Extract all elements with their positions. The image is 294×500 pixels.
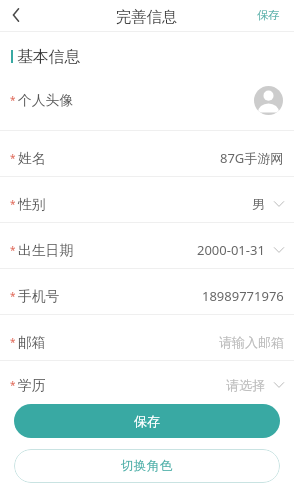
staticText: *: [10, 197, 16, 211]
staticText: 切换角色: [121, 458, 173, 474]
button[interactable]: *: [0, 361, 294, 404]
button[interactable]: 保存: [14, 404, 280, 438]
staticText: *: [10, 378, 16, 392]
button[interactable]: *: [0, 177, 294, 223]
staticText: 18989771976: [202, 287, 284, 305]
staticText: *: [10, 151, 16, 165]
staticText: 完善信息: [116, 7, 178, 26]
button[interactable]: 切换角色: [14, 449, 280, 483]
staticText: 基本信息: [17, 47, 81, 67]
staticText: 保存: [257, 8, 280, 22]
staticText: 87G手游网: [220, 149, 284, 167]
staticText: 性别: [18, 196, 46, 213]
staticText: 出生日期: [18, 242, 74, 259]
staticText: 手机号: [18, 288, 60, 305]
button[interactable]: Back: [0, 0, 34, 31]
staticText: *: [10, 93, 16, 107]
staticText: *: [10, 335, 16, 349]
button[interactable]: *: [0, 315, 294, 361]
button[interactable]: 保存: [243, 0, 294, 31]
staticText: 请输入邮箱: [219, 334, 284, 350]
staticText: 2000-01-31: [197, 241, 265, 259]
staticText: *: [10, 289, 16, 303]
staticText: 学历: [18, 377, 46, 394]
button[interactable]: *: [0, 131, 294, 177]
button[interactable]: *: [0, 223, 294, 269]
button[interactable]: *: [0, 269, 294, 315]
staticText: 个人头像: [18, 92, 74, 109]
staticText: 男: [252, 196, 265, 212]
staticText: 请选择: [226, 377, 265, 393]
staticText: 邮箱: [18, 334, 46, 351]
staticText: 保存: [134, 413, 160, 429]
staticText: 姓名: [18, 150, 46, 167]
button[interactable]: *: [0, 77, 294, 131]
staticText: *: [10, 243, 16, 257]
